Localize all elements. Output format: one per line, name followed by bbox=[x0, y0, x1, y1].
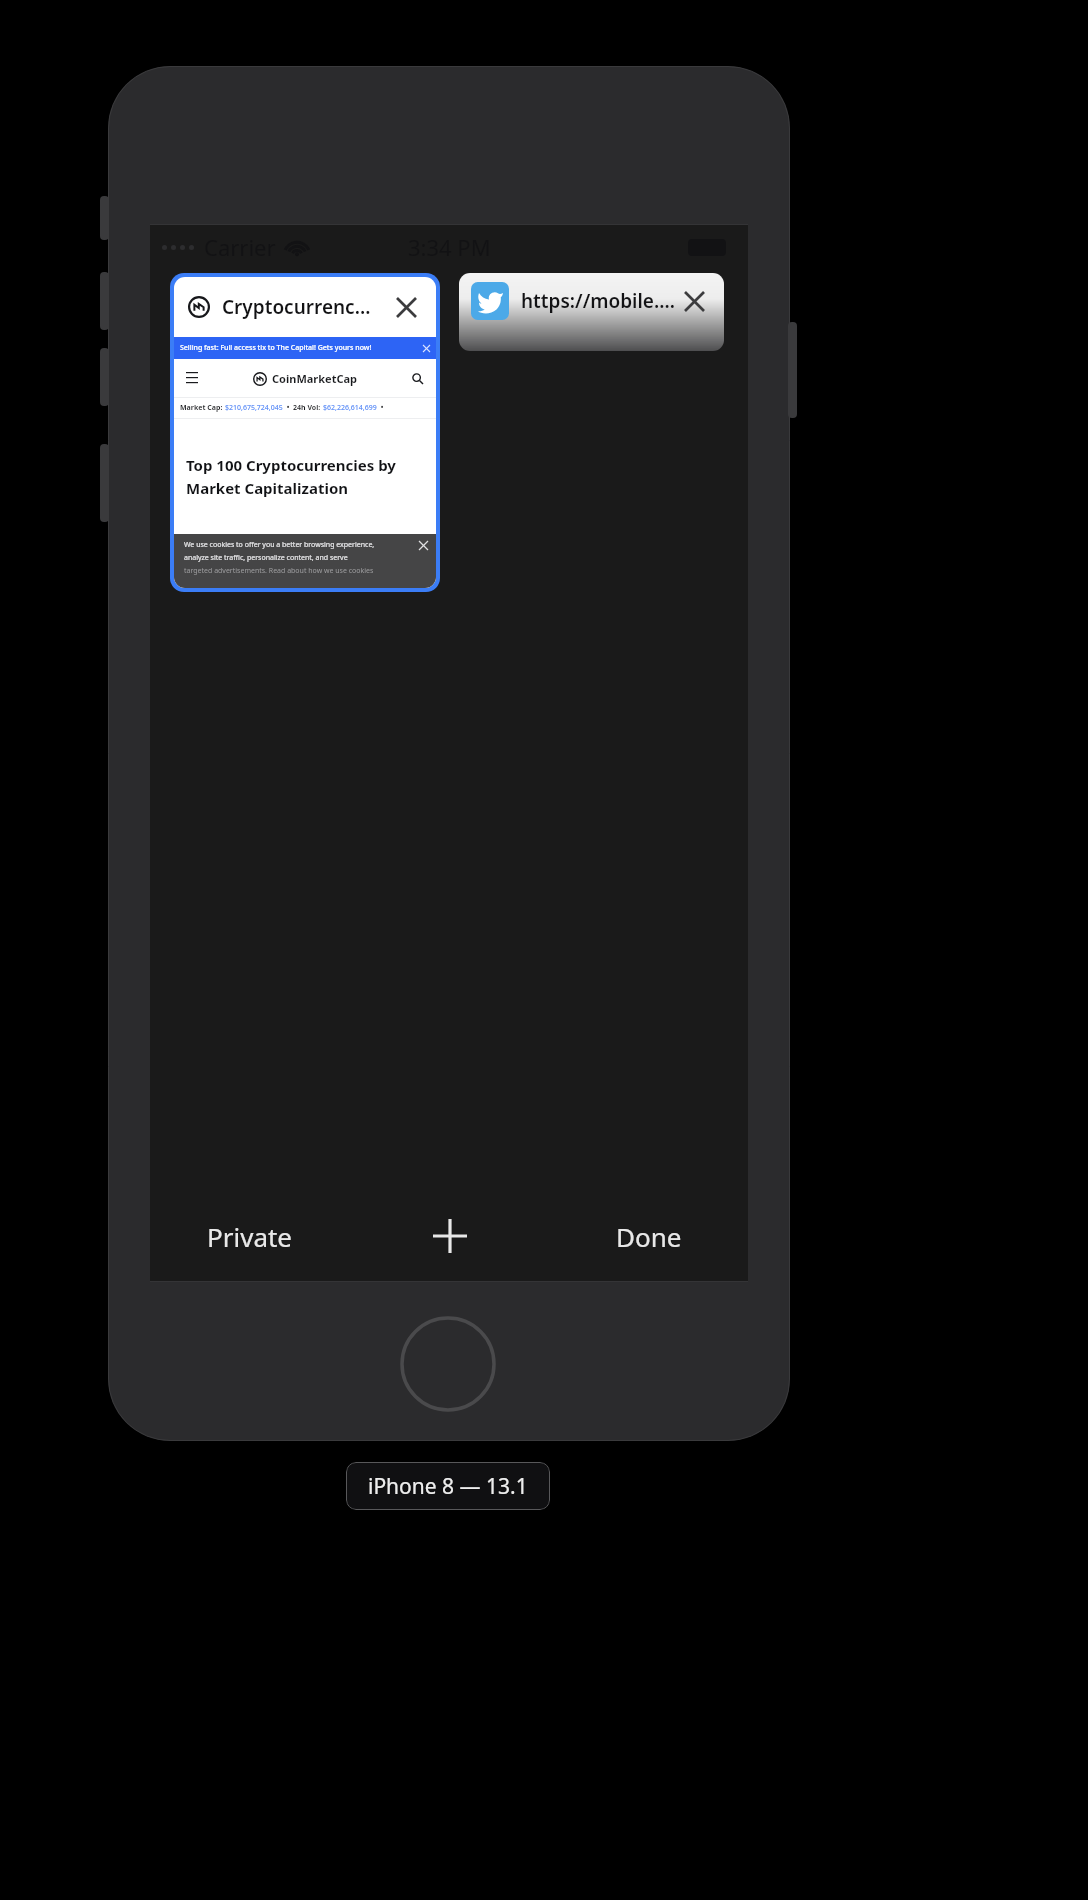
button[interactable]: New tab bbox=[350, 1190, 549, 1282]
staticText: iPhone 8 — 13.1 bbox=[368, 1472, 528, 1501]
button[interactable]: iPhone 8 — 13.1 bbox=[346, 1462, 550, 1510]
button[interactable]: Dismiss cookie notice bbox=[416, 538, 430, 552]
staticText: Cryptocurrenc… bbox=[222, 294, 371, 320]
staticText: Top 100 Cryptocurrencies by bbox=[186, 455, 396, 475]
staticText: Market Cap: bbox=[180, 403, 225, 413]
button[interactable]: Home bbox=[400, 1316, 496, 1412]
staticText: Selling fast: Full access tix to The Cap… bbox=[180, 343, 372, 353]
staticText: • bbox=[283, 403, 293, 413]
staticText: https://mobile.… bbox=[521, 288, 675, 314]
staticText: We use cookies to offer you a better bro… bbox=[184, 540, 375, 550]
button[interactable]: Close tab bbox=[676, 283, 712, 319]
button[interactable]: Close tab bbox=[388, 289, 424, 325]
staticText: Done bbox=[616, 1219, 682, 1254]
button[interactable]: https://mobile.… bbox=[459, 273, 724, 351]
staticText: targeted advertisements. Read about how … bbox=[184, 566, 374, 576]
button[interactable]: Private bbox=[150, 1190, 350, 1282]
button[interactable]: Cryptocurrenc… bbox=[170, 273, 440, 592]
staticText: analyze site traffic, personalize conten… bbox=[184, 553, 348, 563]
staticText: • bbox=[377, 403, 387, 413]
staticText: 24h Vol: bbox=[293, 403, 323, 413]
staticText: Market Capitalization bbox=[186, 478, 349, 498]
staticText: $62,226,614,699 bbox=[323, 403, 377, 413]
staticText: CoinMarketCap bbox=[272, 371, 358, 386]
staticText: $210,675,724,045 bbox=[225, 403, 283, 413]
staticText: Private bbox=[207, 1219, 293, 1254]
button[interactable]: Done bbox=[549, 1190, 748, 1282]
